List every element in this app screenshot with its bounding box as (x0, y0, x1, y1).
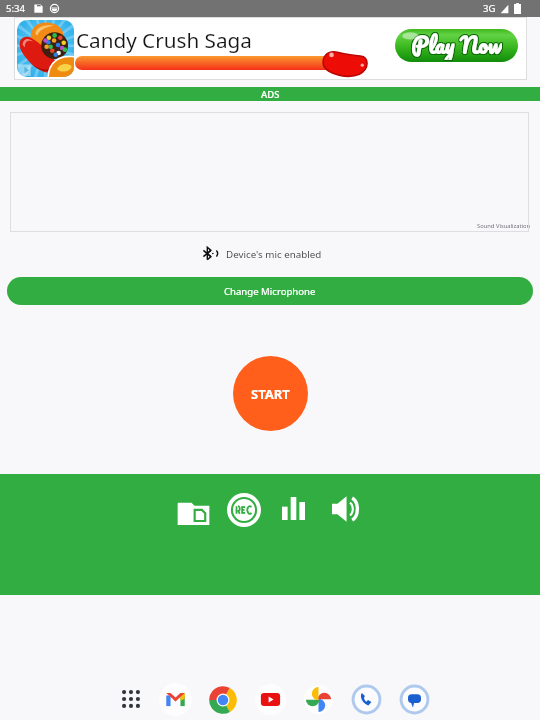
button[interactable]: Messages (396, 681, 432, 717)
button[interactable]: Photos (300, 681, 336, 717)
staticText: ADS (261, 88, 280, 101)
button[interactable]: Record (221, 487, 266, 532)
button[interactable]: Candy Crush Saga (14, 17, 527, 80)
staticText: START (251, 385, 290, 403)
staticText: Sound Visualization (477, 222, 531, 230)
staticText: Play Now (410, 29, 501, 61)
staticText: Play Now (412, 29, 503, 59)
staticText: Change Microphone (224, 285, 316, 298)
button[interactable]: START (233, 356, 308, 431)
button[interactable]: Change Microphone (7, 277, 533, 305)
staticText: Device's mic enabled (226, 248, 322, 261)
button[interactable]: Phone (348, 681, 384, 717)
button[interactable]: Volume (322, 486, 367, 531)
button[interactable]: Gmail (157, 681, 193, 717)
staticText: Play Now (410, 29, 501, 59)
button[interactable]: Recordings folder (171, 491, 216, 536)
staticText: Play Now (411, 29, 502, 60)
staticText: Play Now (410, 29, 501, 60)
button[interactable]: Chrome (205, 682, 241, 718)
staticText: Play Now (412, 29, 503, 61)
button[interactable]: All apps (113, 681, 149, 717)
staticText: Candy Crush Saga (76, 26, 252, 54)
staticText: Play Now (412, 29, 503, 60)
staticText: Play Now (411, 29, 502, 61)
button[interactable]: Play Now (395, 29, 518, 62)
button[interactable]: Equalizer (271, 486, 316, 531)
staticText: Play Now (411, 29, 502, 59)
staticText: 3G (483, 2, 496, 15)
staticText: 5:34 (6, 2, 25, 15)
button[interactable]: YouTube (252, 681, 288, 717)
